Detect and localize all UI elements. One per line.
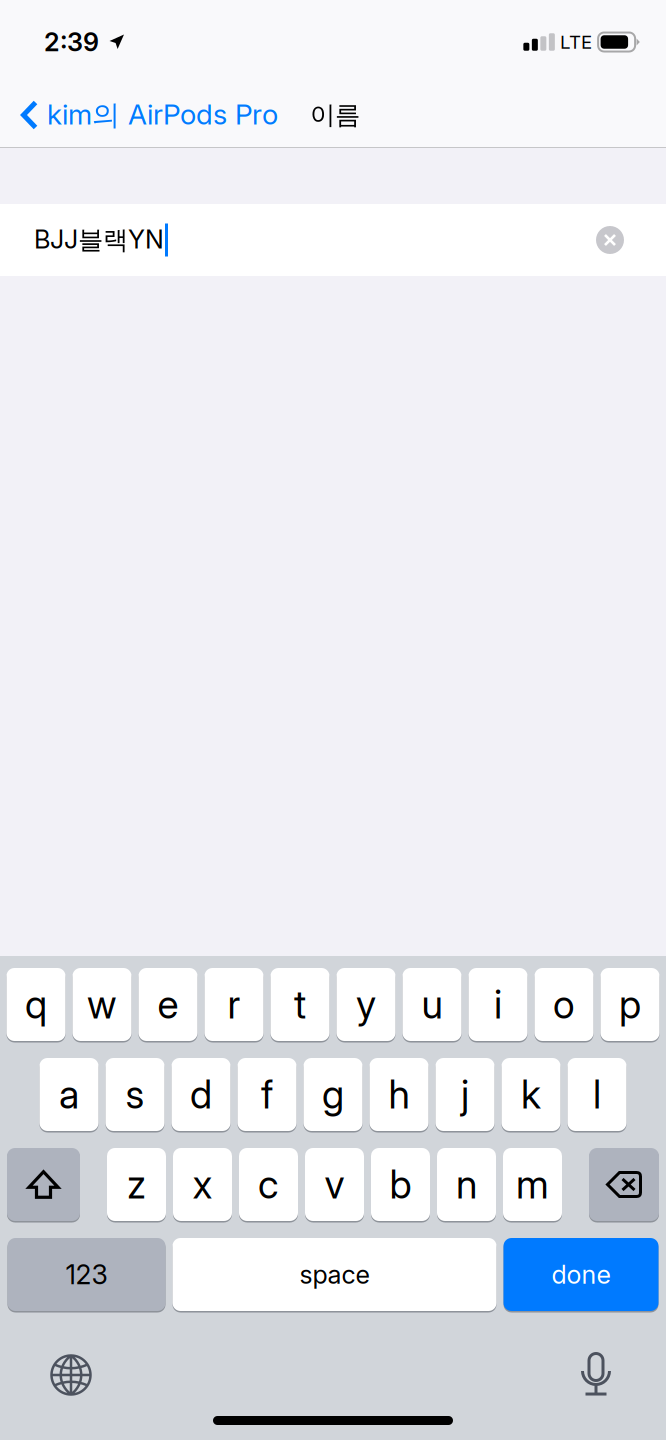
button[interactable]: d xyxy=(171,1058,230,1131)
staticText: q xyxy=(25,981,47,1028)
button[interactable]: kim의 AirPods Pro xyxy=(0,85,286,145)
staticText: w xyxy=(87,981,117,1028)
button[interactable]: k xyxy=(501,1058,560,1131)
staticText: m xyxy=(516,1161,549,1208)
staticText: k xyxy=(521,1071,541,1118)
button[interactable]: q xyxy=(6,968,65,1041)
staticText: j xyxy=(461,1071,469,1118)
staticText: e xyxy=(157,981,178,1028)
button[interactable]: 123 xyxy=(7,1238,165,1311)
button[interactable]: r xyxy=(204,968,263,1041)
button[interactable]: e xyxy=(138,968,197,1041)
button[interactable]: v xyxy=(305,1148,364,1221)
button[interactable]: space xyxy=(172,1238,496,1311)
button[interactable]: y xyxy=(336,968,395,1041)
staticText: BJJ블랙YN xyxy=(34,224,164,256)
staticText: z xyxy=(127,1161,146,1208)
staticText: a xyxy=(59,1071,79,1118)
button[interactable]: Next keyboard xyxy=(41,1347,101,1403)
button[interactable]: Shift xyxy=(7,1148,80,1221)
button[interactable]: m xyxy=(503,1148,562,1221)
staticText: r xyxy=(227,981,240,1028)
staticText: n xyxy=(456,1161,477,1208)
button[interactable]: z xyxy=(107,1148,166,1221)
button[interactable]: l xyxy=(567,1058,626,1131)
button[interactable]: i xyxy=(468,968,527,1041)
button[interactable]: Clear text xyxy=(582,212,638,268)
button[interactable]: Delete xyxy=(589,1148,659,1221)
button[interactable]: n xyxy=(437,1148,496,1221)
staticText: d xyxy=(190,1071,212,1118)
staticText: f xyxy=(261,1071,273,1118)
staticText: l xyxy=(593,1071,601,1118)
staticText: s xyxy=(125,1071,144,1118)
staticText: h xyxy=(388,1071,409,1118)
button[interactable]: x xyxy=(173,1148,232,1221)
staticText: 2:39 xyxy=(44,27,99,57)
staticText: y xyxy=(356,981,376,1028)
button[interactable]: t xyxy=(270,968,329,1041)
staticText: p xyxy=(619,981,641,1028)
staticText: LTE xyxy=(560,31,592,53)
button[interactable]: h xyxy=(369,1058,428,1131)
staticText: x xyxy=(192,1161,212,1208)
staticText: c xyxy=(258,1161,279,1208)
staticText: done xyxy=(551,1259,610,1290)
button[interactable]: c xyxy=(239,1148,298,1221)
staticText: u xyxy=(421,981,442,1028)
staticText: 123 xyxy=(65,1258,107,1291)
staticText: g xyxy=(322,1071,344,1118)
staticText: t xyxy=(294,981,306,1028)
staticText: v xyxy=(324,1161,344,1208)
button[interactable]: s xyxy=(105,1058,164,1131)
button[interactable]: a xyxy=(39,1058,98,1131)
button[interactable]: o xyxy=(534,968,593,1041)
button[interactable]: done xyxy=(503,1238,658,1311)
staticText: 이름 xyxy=(310,99,360,131)
button[interactable]: p xyxy=(600,968,659,1041)
staticText: b xyxy=(389,1161,411,1208)
staticText: kim의 AirPods Pro xyxy=(47,97,278,133)
button[interactable]: Dictation xyxy=(566,1347,626,1403)
button[interactable]: w xyxy=(72,968,131,1041)
staticText: space xyxy=(299,1259,369,1290)
button[interactable]: f xyxy=(237,1058,296,1131)
button[interactable]: b xyxy=(371,1148,430,1221)
staticText: o xyxy=(553,981,575,1028)
staticText: i xyxy=(494,981,502,1028)
button[interactable]: u xyxy=(402,968,461,1041)
button[interactable]: j xyxy=(435,1058,494,1131)
button[interactable]: g xyxy=(303,1058,362,1131)
